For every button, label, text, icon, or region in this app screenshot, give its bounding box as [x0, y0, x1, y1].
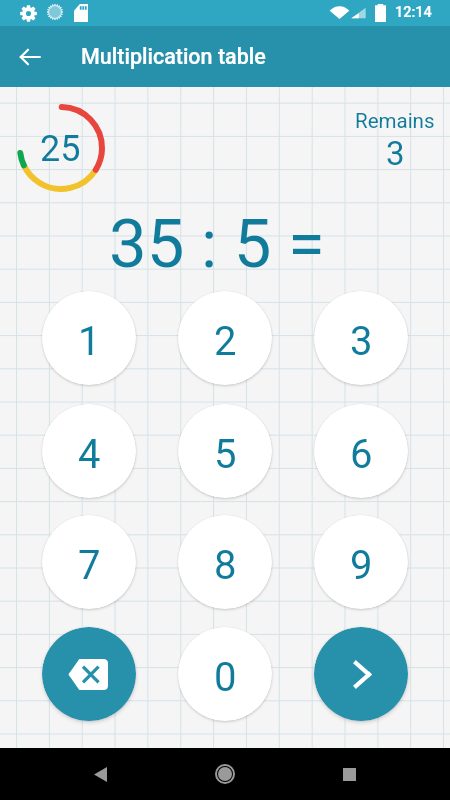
button[interactable]: 2: [178, 291, 272, 385]
button[interactable]: 5: [178, 404, 272, 498]
staticText: 8: [214, 542, 237, 589]
button[interactable]: 3: [314, 291, 408, 385]
staticText: 2: [214, 318, 237, 365]
button[interactable]: Home: [199, 748, 251, 800]
button[interactable]: Navigate up: [14, 41, 46, 73]
staticText: 4: [78, 431, 101, 478]
button[interactable]: 1: [42, 291, 136, 385]
staticText: 9: [350, 542, 373, 589]
staticText: 3: [386, 134, 405, 173]
button[interactable]: 6: [314, 404, 408, 498]
staticText: 1: [78, 318, 101, 365]
button[interactable]: 7: [42, 515, 136, 609]
button[interactable]: Next: [314, 627, 408, 721]
staticText: Multiplication table: [81, 44, 266, 69]
staticText: 5: [214, 431, 237, 478]
staticText: 12:14: [395, 4, 432, 21]
staticText: 6: [350, 431, 373, 478]
button[interactable]: 8: [178, 515, 272, 609]
staticText: 25: [40, 128, 81, 170]
staticText: 7: [78, 542, 101, 589]
button[interactable]: Recent apps: [323, 748, 375, 800]
button[interactable]: Back: [74, 748, 126, 800]
button[interactable]: 0: [178, 627, 272, 721]
staticText: 3: [350, 318, 373, 365]
staticText: 0: [214, 654, 237, 701]
staticText: 35 : 5 =: [109, 205, 325, 284]
button[interactable]: Delete: [42, 627, 136, 721]
button[interactable]: 9: [314, 515, 408, 609]
button[interactable]: 4: [42, 404, 136, 498]
staticText: Remains: [355, 109, 435, 133]
